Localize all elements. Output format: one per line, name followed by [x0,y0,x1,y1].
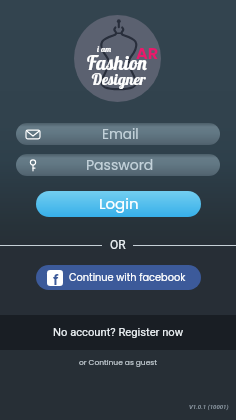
staticText: Email [102,125,139,144]
staticText: f [53,271,59,287]
staticText: Password [86,155,154,175]
staticText: OR [110,238,126,252]
other: Email [25,128,41,141]
staticText: Continue with facebook [69,271,186,285]
button[interactable]: or Continue as guest [0,354,236,370]
button[interactable]: No account? Register now [0,315,236,350]
button[interactable]: Facebook [36,265,201,290]
staticText: i am [97,44,112,54]
staticText: Designer [91,69,146,88]
staticText: V1.0.1 (10001) [189,403,229,410]
staticText: Login [99,193,139,214]
staticText: Fashion [86,50,148,74]
staticText: No account? Register now [53,326,184,339]
button[interactable]: Email [16,123,220,145]
other: Facebook [47,270,63,286]
staticText: or Continue as guest [79,357,157,367]
button[interactable]: Login [36,191,201,217]
staticText: AR [136,42,159,64]
other: Password [25,159,41,172]
button[interactable]: Password [16,154,220,176]
